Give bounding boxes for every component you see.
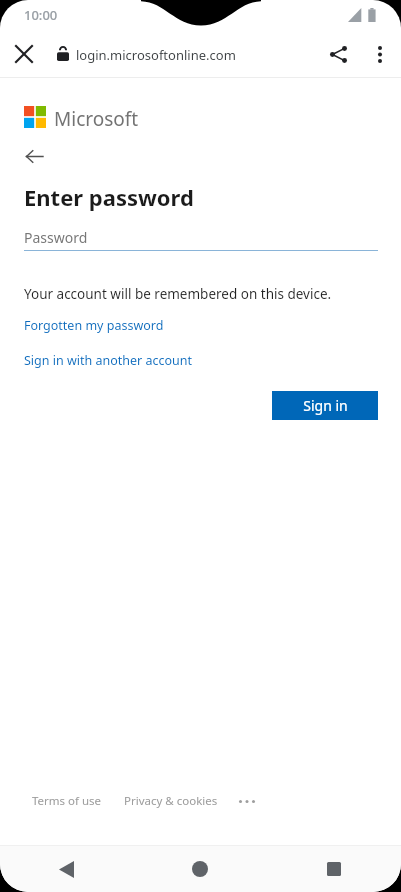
button[interactable]: Terms of use xyxy=(28,789,106,813)
staticText: Sign in with another account xyxy=(24,352,193,369)
button[interactable]: Forgotten my password xyxy=(20,314,168,337)
staticText: Your account will be remembered on this … xyxy=(24,285,332,303)
staticText: Forgotten my password xyxy=(24,317,164,334)
staticText: 10:00 xyxy=(24,6,58,24)
button[interactable]: Sign in xyxy=(272,391,378,420)
staticText: Microsoft xyxy=(54,106,139,132)
button[interactable]: Sign in with another account xyxy=(20,349,197,372)
button[interactable]: Close xyxy=(6,36,42,72)
button[interactable]: Back xyxy=(16,140,56,172)
button[interactable]: Back xyxy=(0,846,133,892)
button[interactable]: More xyxy=(234,790,260,812)
button[interactable]: Home xyxy=(133,846,267,892)
staticText: Password xyxy=(24,228,88,247)
button[interactable]: Recent apps xyxy=(267,846,401,892)
staticText: login.microsoftonline.com xyxy=(76,46,236,64)
staticText: Sign in xyxy=(303,396,348,415)
button[interactable]: More options xyxy=(362,36,398,72)
staticText: Enter password xyxy=(24,182,194,212)
staticText: Privacy & cookies xyxy=(124,793,218,809)
button[interactable]: Share xyxy=(320,36,356,72)
staticText: Terms of use xyxy=(32,793,102,809)
button[interactable]: Privacy & cookies xyxy=(120,789,222,813)
